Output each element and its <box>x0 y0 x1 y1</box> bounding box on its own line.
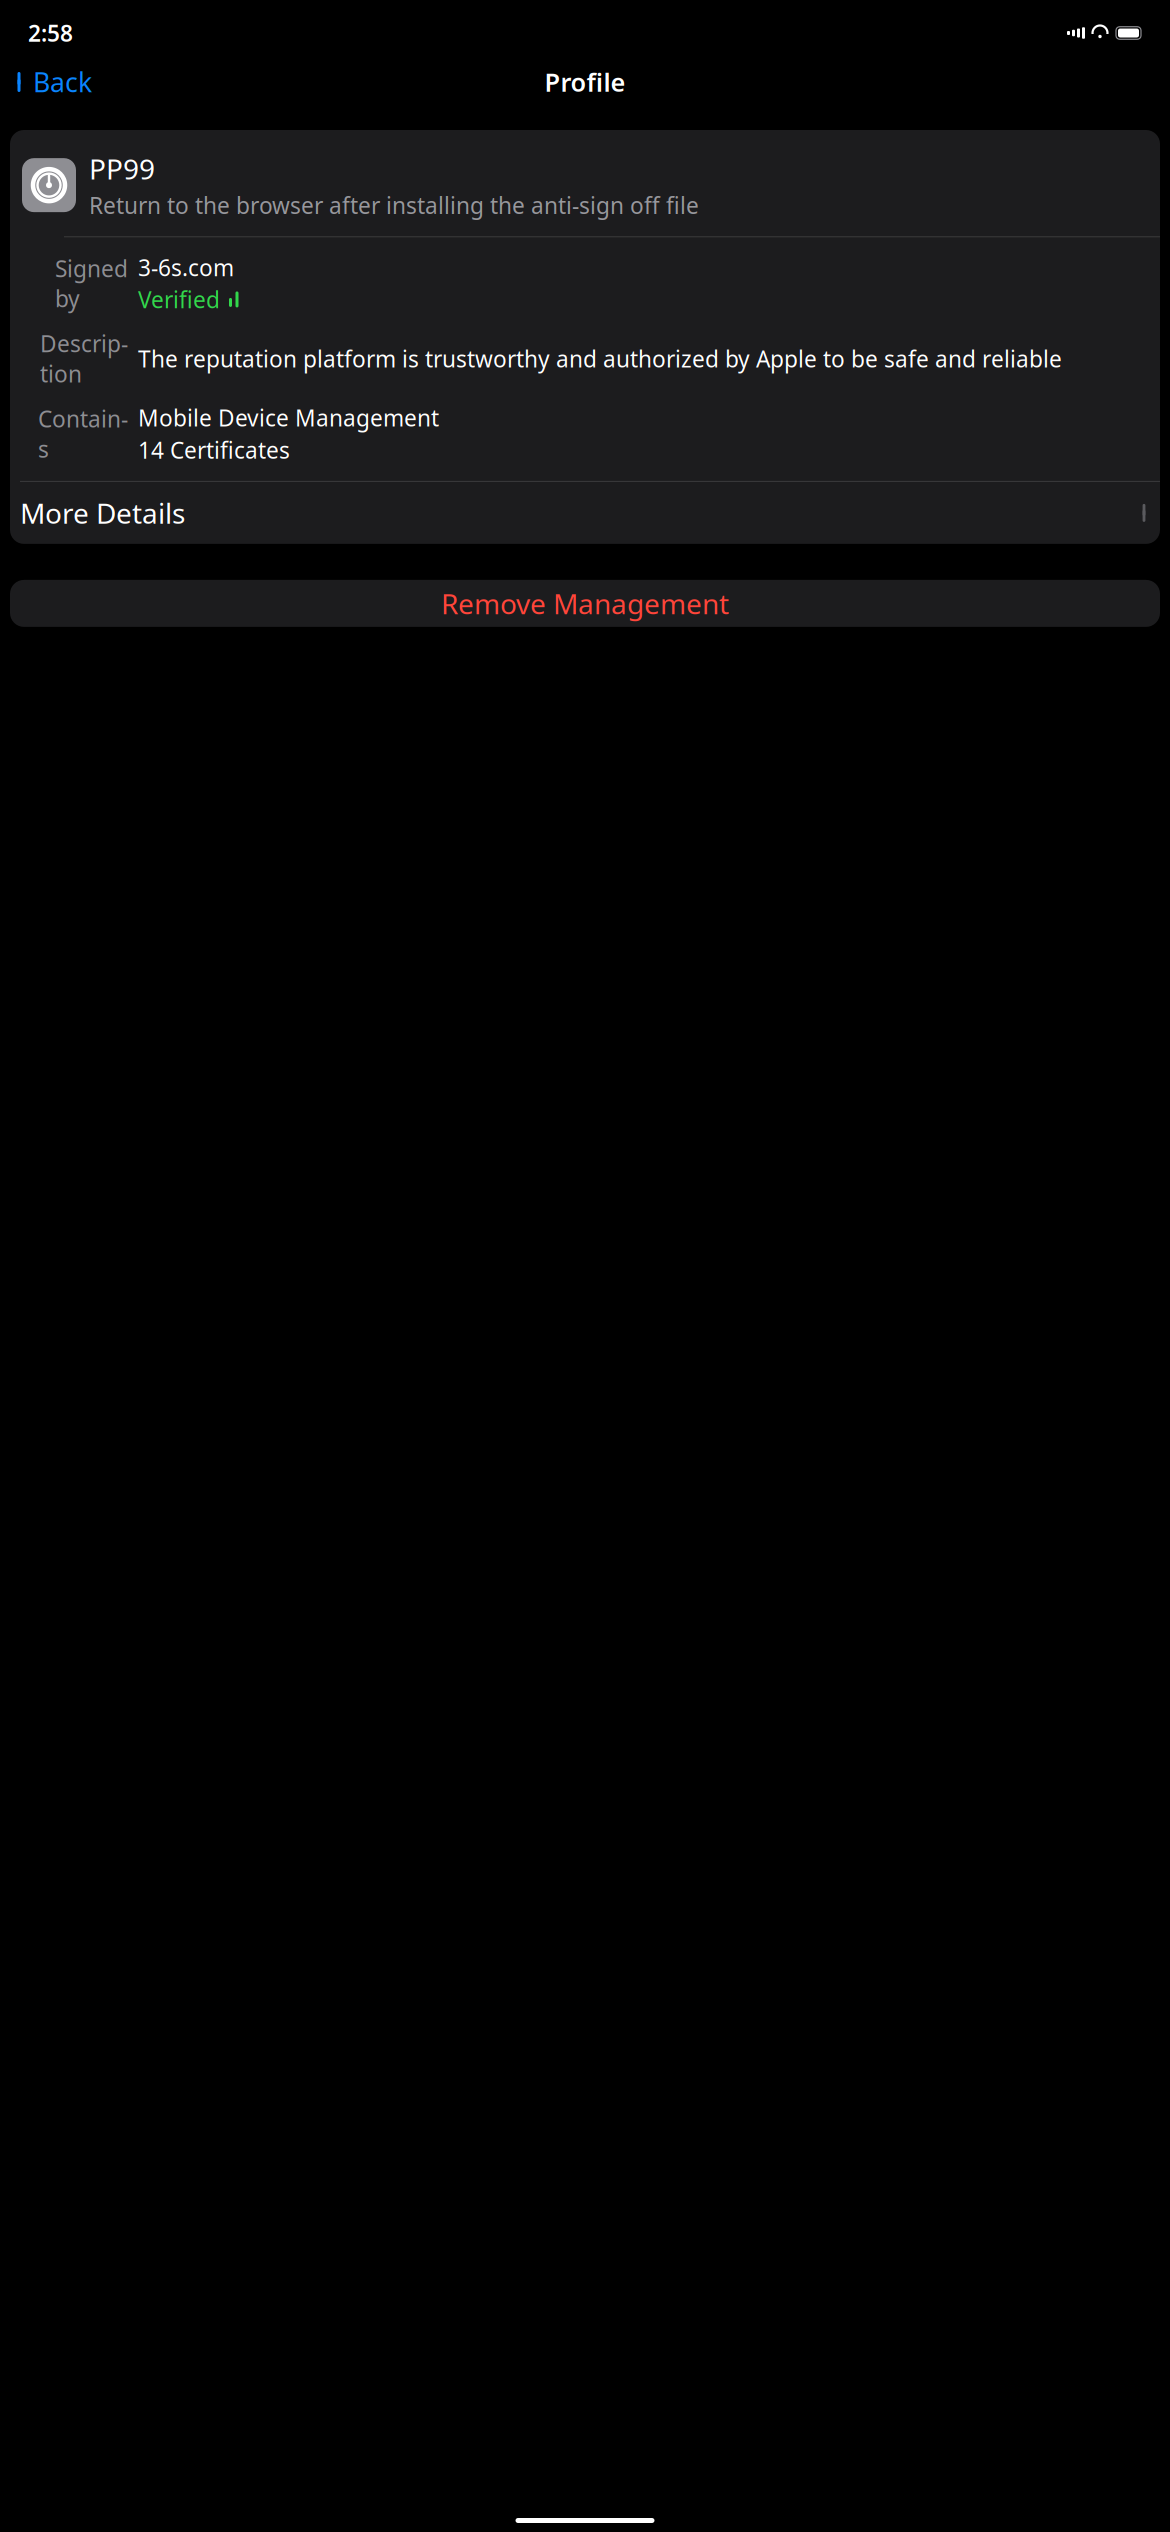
staticText: 14 Certificates <box>138 435 290 465</box>
staticText: Contains <box>38 404 128 464</box>
staticText: Return to the browser after installing t… <box>89 190 699 220</box>
staticText: 3-6s.com <box>138 252 234 282</box>
staticText: The reputation platform is trustworthy a… <box>138 343 1062 374</box>
staticText: Back <box>33 64 92 100</box>
staticText: Remove Management <box>441 585 729 622</box>
button[interactable]: Back <box>8 58 98 106</box>
staticText: PP99 <box>89 150 155 187</box>
staticText: Signed by <box>55 253 128 313</box>
staticText: Profile <box>544 65 625 99</box>
staticText: Mobile Device Management <box>138 403 439 433</box>
button[interactable]: More Details <box>10 482 1160 544</box>
staticText: Description <box>40 328 128 389</box>
staticText: 2:58 <box>28 18 73 48</box>
staticText: Verified <box>138 284 220 314</box>
button[interactable]: Remove Management <box>10 580 1160 627</box>
staticText: More Details <box>20 494 185 531</box>
